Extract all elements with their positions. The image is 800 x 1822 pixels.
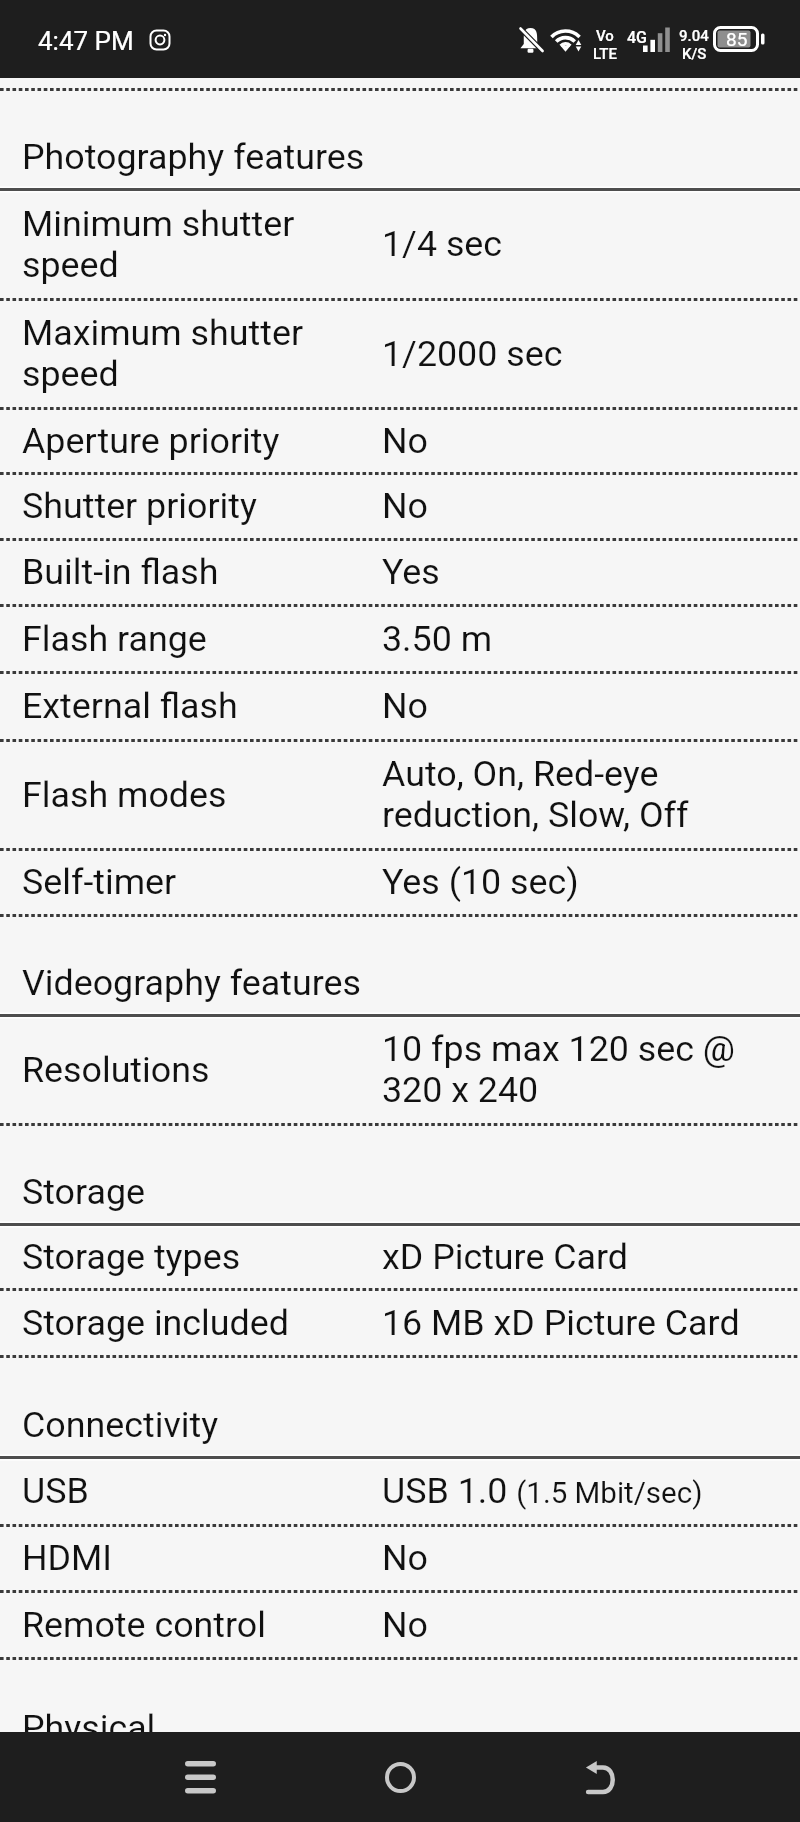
staticText: Minimum shutter speed: [22, 204, 358, 286]
staticText: Yes (10 sec): [382, 862, 579, 903]
staticText: External flash: [22, 686, 238, 727]
staticText: No: [382, 686, 428, 727]
staticText: 4:47 PM: [38, 26, 134, 56]
button[interactable]: Maximum shutter speed: [0, 301, 800, 407]
staticText: Vo: [596, 27, 614, 45]
staticText: Remote control: [22, 1605, 266, 1646]
staticText: No: [382, 1605, 428, 1646]
button[interactable]: Storage: [0, 1126, 800, 1223]
button[interactable]: Storage included: [0, 1291, 800, 1355]
button[interactable]: Back: [540, 1732, 660, 1822]
button[interactable]: Shutter priority: [0, 475, 800, 538]
staticText: Flash modes: [22, 775, 227, 816]
button[interactable]: Home: [340, 1732, 460, 1822]
staticText: Yes: [382, 552, 440, 593]
staticText: HDMI: [22, 1538, 113, 1579]
staticText: No: [382, 486, 428, 527]
button[interactable]: HDMI: [0, 1527, 800, 1590]
staticText: 3.50 m: [382, 619, 493, 660]
staticText: Photography features: [22, 137, 365, 178]
staticText: K/S: [682, 45, 707, 63]
staticText: Resolutions: [22, 1050, 210, 1091]
staticText: Physical: [22, 1708, 156, 1749]
button[interactable]: Storage types: [0, 1226, 800, 1288]
staticText: 1/4 sec: [382, 224, 503, 265]
staticText: Aperture priority: [22, 421, 280, 462]
staticText: Connectivity: [22, 1405, 219, 1446]
button[interactable]: Aperture priority: [0, 410, 800, 472]
button[interactable]: Remote control: [0, 1593, 800, 1657]
button[interactable]: Built-in flash: [0, 541, 800, 604]
button[interactable]: Photography features: [0, 91, 800, 188]
button[interactable]: Connectivity: [0, 1358, 800, 1456]
staticText: 1/2000 sec: [382, 334, 563, 375]
staticText: USB: [22, 1471, 89, 1512]
staticText: Self-timer: [22, 862, 177, 903]
button[interactable]: Flash modes: [0, 742, 800, 848]
staticText: 9.04: [679, 27, 709, 45]
staticText: Auto, On, Red-eye reduction, Slow, Off: [382, 754, 774, 836]
button[interactable]: USB: [0, 1459, 800, 1524]
staticText: Storage included: [22, 1303, 289, 1344]
button[interactable]: Flash range: [0, 607, 800, 671]
staticText: Storage: [22, 1172, 146, 1213]
button[interactable]: Physical: [0, 1660, 800, 1732]
button[interactable]: External flash: [0, 674, 800, 739]
button[interactable]: Videography features: [0, 917, 800, 1014]
staticText: No: [382, 1538, 428, 1579]
staticText: Storage types: [22, 1237, 241, 1278]
button[interactable]: Minimum shutter speed: [0, 191, 800, 298]
staticText: LTE: [593, 45, 617, 63]
staticText: Videography features: [22, 963, 361, 1004]
staticText: Maximum shutter speed: [22, 313, 358, 395]
staticText: Shutter priority: [22, 486, 257, 527]
button[interactable]: Recent apps: [140, 1732, 260, 1822]
button[interactable]: Self-timer: [0, 851, 800, 914]
staticText: 4G: [627, 28, 647, 47]
button[interactable]: Resolutions: [0, 1017, 800, 1123]
staticText: 85: [726, 28, 748, 50]
staticText: USB 1.0 (1.5 Mbit/sec): [382, 1471, 703, 1512]
staticText: No: [382, 421, 428, 462]
staticText: 16 MB xD Picture Card: [382, 1303, 740, 1344]
staticText: Flash range: [22, 619, 207, 660]
staticText: 10 fps max 120 sec @ 320 x 240: [382, 1029, 774, 1111]
staticText: Built-in flash: [22, 552, 219, 593]
staticText: xD Picture Card: [382, 1237, 629, 1278]
